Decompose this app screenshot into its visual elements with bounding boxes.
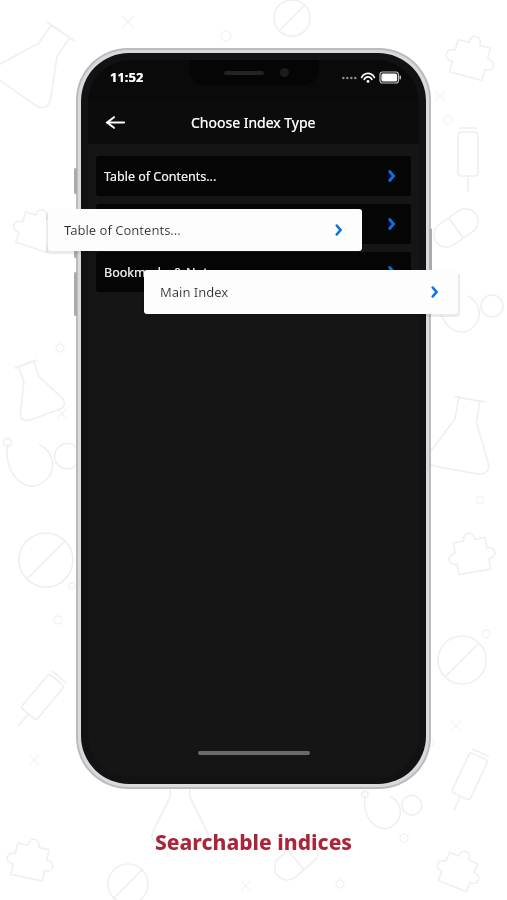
button[interactable]: Main Index [96, 204, 411, 244]
staticText: 11:52 [110, 68, 144, 86]
staticText: Table of Contents... [64, 221, 181, 239]
staticText: Table of Contents... [104, 168, 217, 185]
button[interactable]: Main Index [144, 270, 458, 314]
staticText: Main Index [104, 216, 170, 233]
staticText: Searchable indices [0, 828, 507, 857]
staticText: Main Index [160, 283, 229, 301]
button[interactable]: Bookmarks & Notes [96, 252, 411, 292]
button[interactable]: Table of Contents... [96, 156, 411, 196]
staticText: Choose Index Type [191, 113, 316, 132]
button[interactable]: Back [96, 103, 134, 141]
button[interactable]: Table of Contents... [48, 209, 362, 251]
staticText: Bookmarks & Notes [104, 264, 221, 281]
